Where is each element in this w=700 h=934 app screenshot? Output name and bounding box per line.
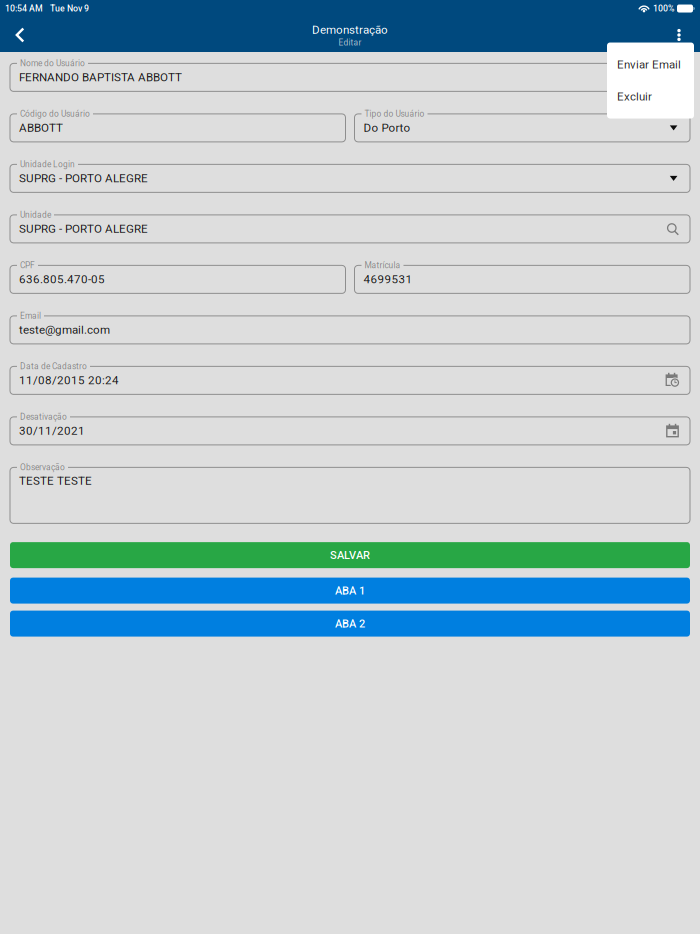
staticText: Email	[20, 311, 41, 321]
staticText: Observação	[20, 462, 65, 472]
staticText: 100%	[653, 3, 674, 14]
staticText: FERNANDO BAPTISTA ABBOTT	[19, 71, 182, 84]
button[interactable]: ABA 2	[10, 611, 690, 637]
staticText: Código do Usuário	[20, 109, 90, 119]
staticText: Demonstração	[312, 23, 388, 37]
staticText: Do Porto	[363, 121, 410, 135]
staticText: Matrícula	[364, 260, 400, 270]
staticText: 30/11/2021	[19, 424, 85, 438]
staticText: Desativação	[20, 412, 67, 422]
staticText: CPF	[20, 260, 35, 270]
staticText: TESTE TESTE	[19, 474, 92, 488]
staticText: SUPRG - PORTO ALEGRE	[19, 172, 148, 185]
staticText: SUPRG - PORTO ALEGRE	[19, 222, 148, 236]
staticText: SALVAR	[330, 549, 370, 562]
staticText: Unidade Login	[20, 159, 75, 169]
button[interactable]: SALVAR	[10, 542, 690, 568]
staticText: Editar	[338, 38, 361, 47]
staticText: Tipo do Usuário	[364, 109, 424, 119]
button[interactable]: ABA 1	[10, 578, 690, 604]
staticText: 11/08/2015 20:24	[19, 374, 119, 387]
staticText: Unidade	[20, 210, 51, 220]
staticText: 636.805.470-05	[19, 273, 105, 286]
staticText: Enviar Email	[617, 58, 681, 71]
staticText: 10:54 AM	[5, 3, 43, 14]
staticText: ABBOTT	[19, 121, 63, 135]
button[interactable]: Excluir	[607, 80, 694, 112]
staticText: teste@gmail.com	[19, 323, 110, 337]
staticText: ABA 2	[335, 617, 365, 630]
staticText: ABA 1	[335, 584, 365, 597]
staticText: Nome do Usuário	[20, 58, 85, 68]
staticText: Tue Nov 9	[50, 3, 89, 14]
staticText: Excluir	[617, 90, 652, 103]
button[interactable]: Enviar Email	[607, 48, 694, 80]
staticText: 4699531	[363, 273, 412, 286]
button[interactable]: More options	[664, 18, 694, 52]
staticText: Data de Cadastro	[20, 361, 87, 371]
button[interactable]: Back	[4, 18, 34, 52]
